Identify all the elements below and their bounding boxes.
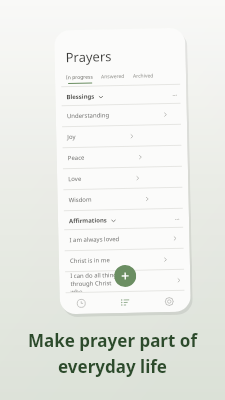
button[interactable]: Christ is in me xyxy=(59,249,190,271)
staticText: Answered xyxy=(101,73,125,80)
button[interactable]: Affirmations xyxy=(58,209,189,229)
staticText: ••• xyxy=(172,93,177,98)
staticText: Affirmations xyxy=(69,216,107,225)
button[interactable]: Answered xyxy=(101,73,125,83)
button[interactable]: I am always loved xyxy=(58,228,190,250)
staticText: Blessings xyxy=(66,93,95,101)
staticText: Christ is in me xyxy=(70,256,110,265)
button[interactable]: Blessings xyxy=(55,85,186,105)
staticText: Make prayer part of xyxy=(28,329,197,352)
staticText: Peace xyxy=(68,154,85,162)
staticText: I can do all things through Christ who xyxy=(70,271,123,292)
staticText: Prayers xyxy=(65,47,112,66)
staticText: Understanding xyxy=(67,111,110,120)
button[interactable]: Understanding xyxy=(56,104,187,126)
staticText: In progress xyxy=(66,74,93,81)
staticText: Archived xyxy=(133,72,154,80)
button[interactable]: Wisdom xyxy=(57,188,189,210)
button[interactable]: Settings xyxy=(146,291,191,312)
button[interactable]: History xyxy=(59,292,103,314)
button[interactable]: Peace xyxy=(56,146,188,168)
button[interactable]: Add prayer xyxy=(114,265,136,287)
button[interactable]: Prayer list xyxy=(102,291,147,313)
button[interactable]: I can do all things through Christ who xyxy=(59,270,190,292)
staticText: ••• xyxy=(175,217,180,222)
staticText: I am always loved xyxy=(69,235,120,244)
button[interactable]: Love xyxy=(57,167,188,189)
button[interactable]: In progress xyxy=(66,74,93,84)
staticText: Wisdom xyxy=(68,196,92,204)
button[interactable]: Joy xyxy=(56,125,187,147)
staticText: everyday life xyxy=(58,355,167,378)
button[interactable]: Archived xyxy=(133,72,154,83)
staticText: Love xyxy=(68,175,82,183)
staticText: Joy xyxy=(67,133,76,141)
